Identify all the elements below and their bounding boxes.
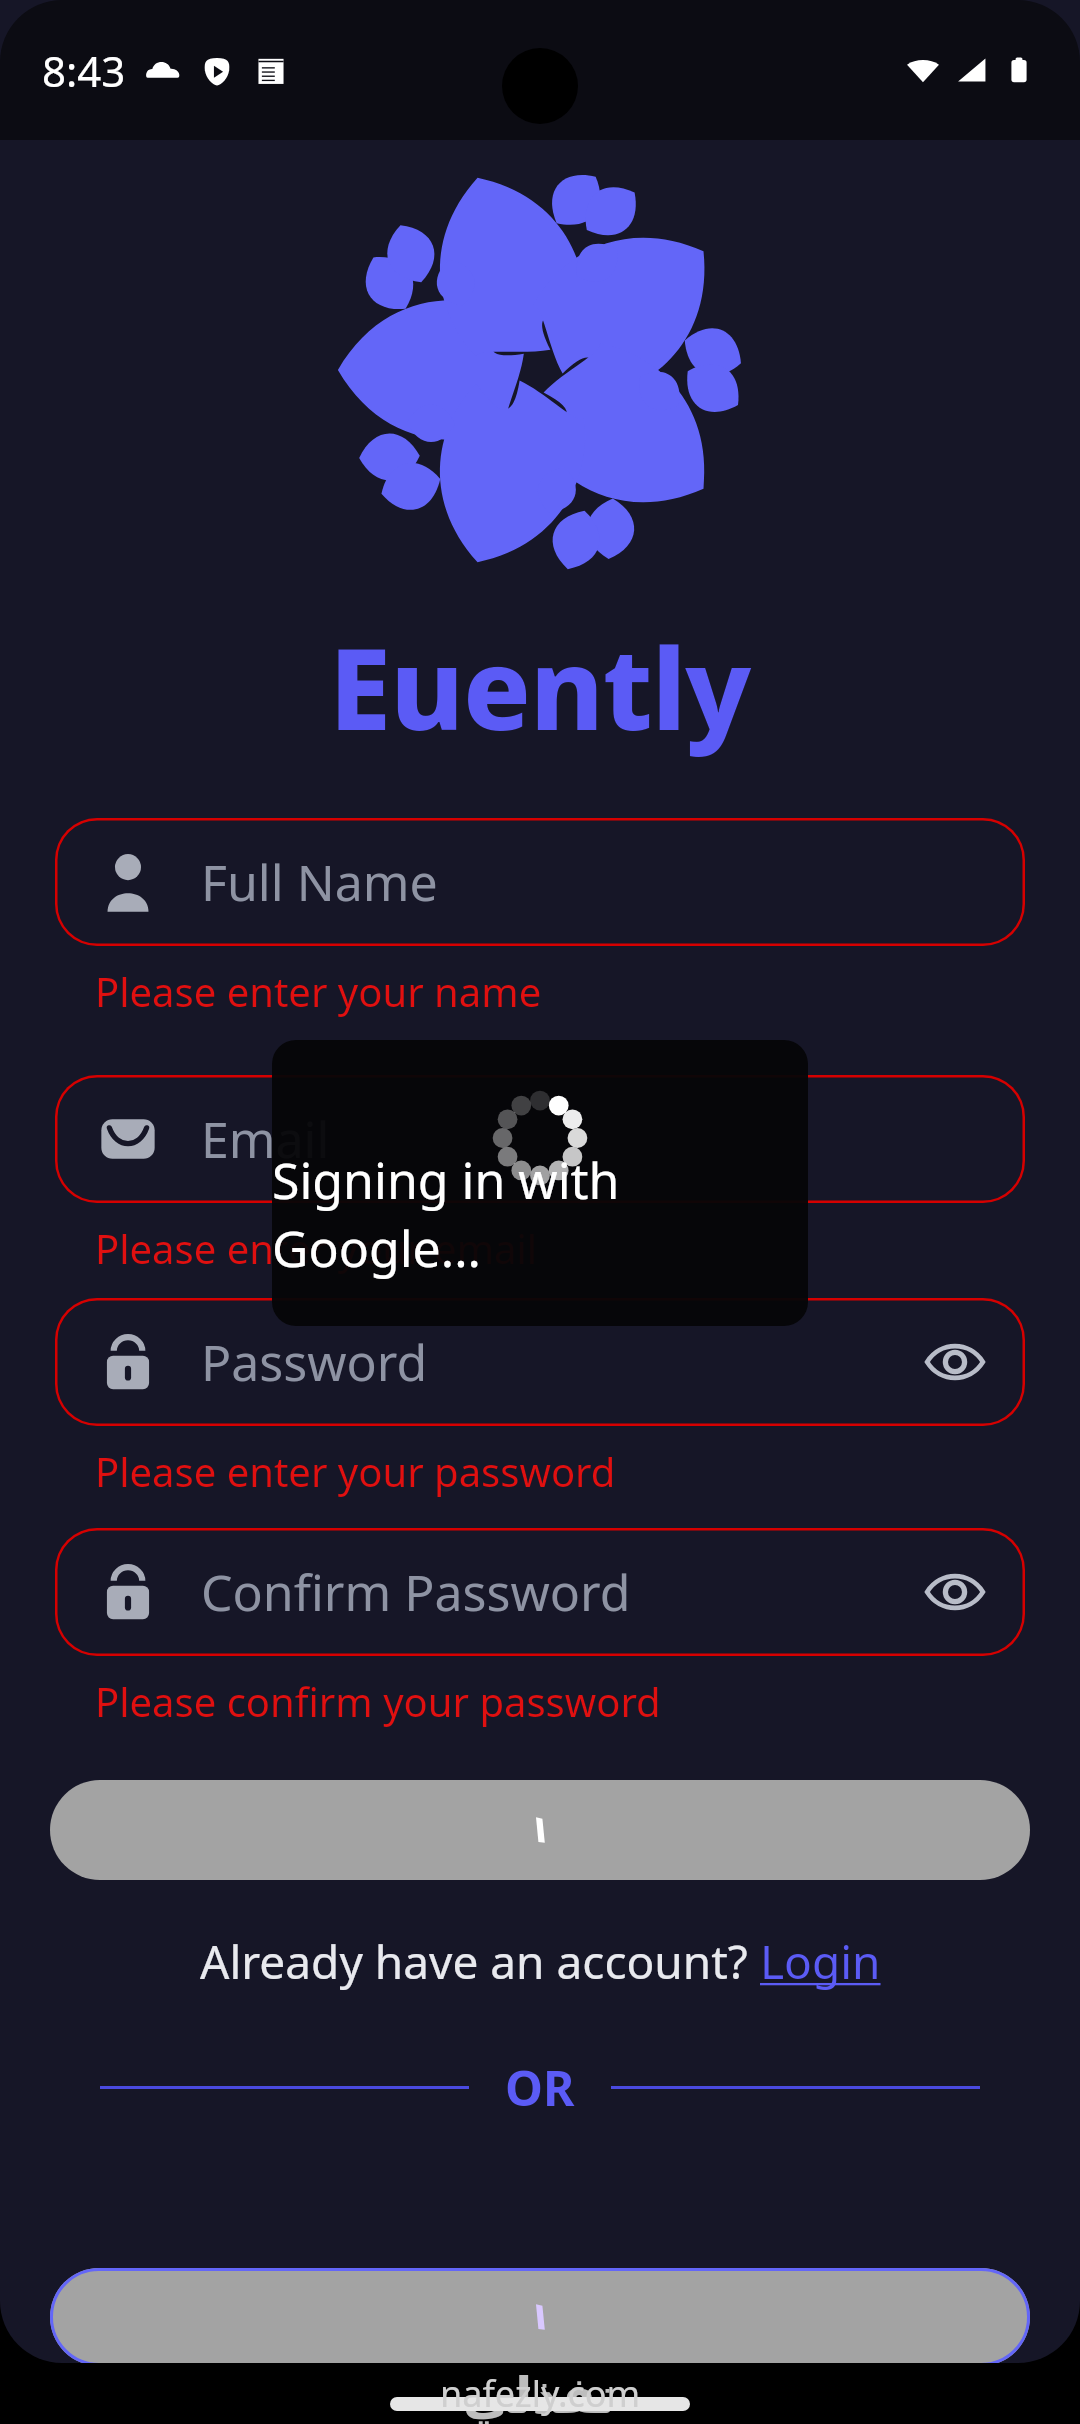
button[interactable]: Password (55, 1298, 1025, 1426)
staticText: Please enter your password (95, 1444, 616, 1498)
staticText: Please confirm your password (95, 1674, 661, 1728)
button[interactable]: Toggle password visibility (907, 1314, 1003, 1410)
button[interactable] (50, 1780, 1030, 1880)
staticText: نفذلي (463, 2367, 617, 2424)
staticText: Signing in with Google... (272, 1146, 808, 1282)
staticText: Please enter your name (95, 964, 542, 1018)
staticText: nafezly.com (440, 2369, 641, 2418)
staticText: Please enter your email (95, 1221, 538, 1275)
staticText: OR (505, 2055, 575, 2120)
button[interactable]: Email (55, 1075, 1025, 1203)
button[interactable]: Full Name (55, 818, 1025, 946)
staticText: Password (201, 1328, 428, 1396)
staticText: Login (760, 1930, 881, 1993)
button[interactable]: Confirm Password (55, 1528, 1025, 1656)
button[interactable]: Login (760, 1930, 881, 1993)
other: Home (390, 2397, 690, 2411)
staticText: Euently (329, 610, 751, 763)
button[interactable]: Toggle password visibility (907, 1544, 1003, 1640)
staticText: Confirm Password (201, 1558, 631, 1626)
button[interactable]: Sign in with Google (50, 2268, 1030, 2363)
staticText: Already have an account? (200, 1930, 760, 1993)
staticText: 8:43 (42, 42, 126, 99)
staticText: Full Name (201, 848, 438, 916)
staticText: Email (201, 1105, 330, 1173)
